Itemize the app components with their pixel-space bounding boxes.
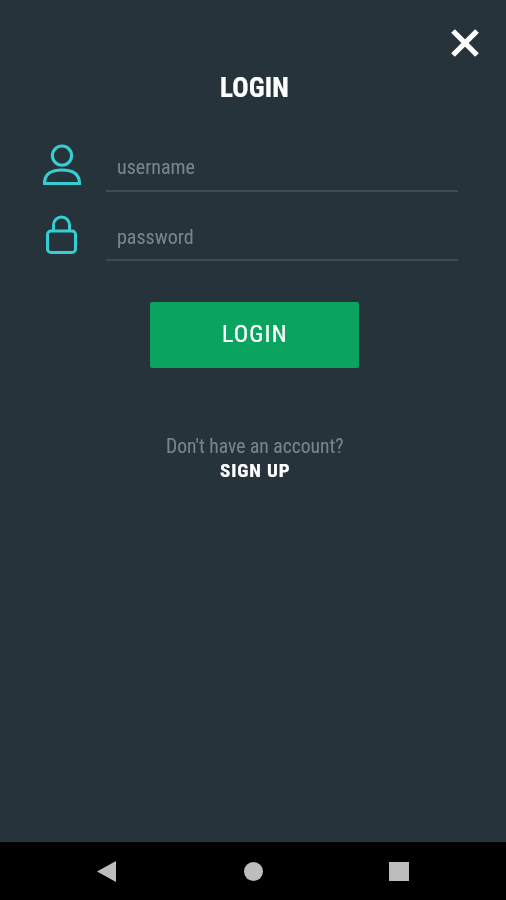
staticText: Don't have an account? [166,435,344,458]
button[interactable]: Recent apps [375,842,423,900]
button[interactable]: Back [82,842,130,900]
button[interactable]: SIGN UP [220,459,291,481]
button[interactable]: LOGIN [150,302,359,368]
staticText: username [117,155,195,178]
staticText: SIGN UP [220,459,291,481]
staticText: password [117,225,194,248]
button[interactable]: Home [229,842,277,900]
staticText: LOGIN [222,320,288,348]
button[interactable]: Close [441,19,489,67]
staticText: LOGIN [220,72,290,104]
